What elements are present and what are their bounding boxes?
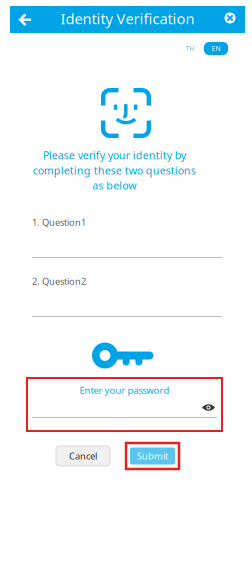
staticText: Please verify your identity by completin… xyxy=(32,148,195,192)
staticText: Submit xyxy=(137,450,168,462)
staticText: EN xyxy=(211,44,220,53)
button[interactable]: EN xyxy=(204,42,228,55)
staticText: 2. Question2 xyxy=(32,275,86,287)
button[interactable]: Cancel xyxy=(56,446,110,466)
button[interactable]: Back xyxy=(10,6,40,33)
button[interactable]: Submit xyxy=(126,443,179,469)
button[interactable]: TH xyxy=(183,42,197,55)
staticText: Cancel xyxy=(69,450,97,462)
staticText: TH xyxy=(185,44,194,53)
staticText: Identity Verification xyxy=(60,9,194,28)
button[interactable]: Close xyxy=(215,6,245,33)
staticText: 1. Question1 xyxy=(32,216,86,228)
staticText: Enter your password xyxy=(79,384,169,396)
